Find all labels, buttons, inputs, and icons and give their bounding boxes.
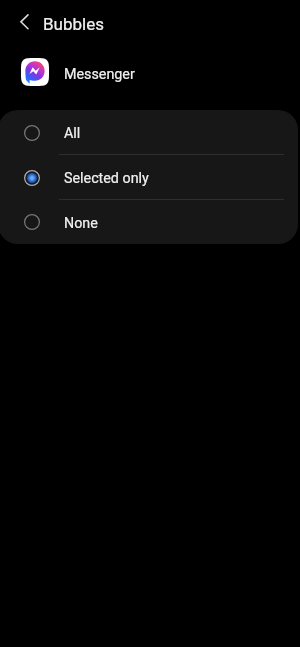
button[interactable]: Navigate up	[8, 7, 38, 37]
staticText: Messenger	[64, 66, 135, 83]
button[interactable]: Selected only	[0, 155, 298, 200]
staticText: Bubbles	[43, 14, 104, 34]
staticText: None	[64, 215, 98, 232]
staticText: All	[64, 125, 81, 142]
staticText: Selected only	[64, 170, 149, 187]
button[interactable]: Messenger	[0, 52, 300, 92]
button[interactable]: None	[0, 200, 298, 244]
button[interactable]: All	[0, 110, 298, 155]
